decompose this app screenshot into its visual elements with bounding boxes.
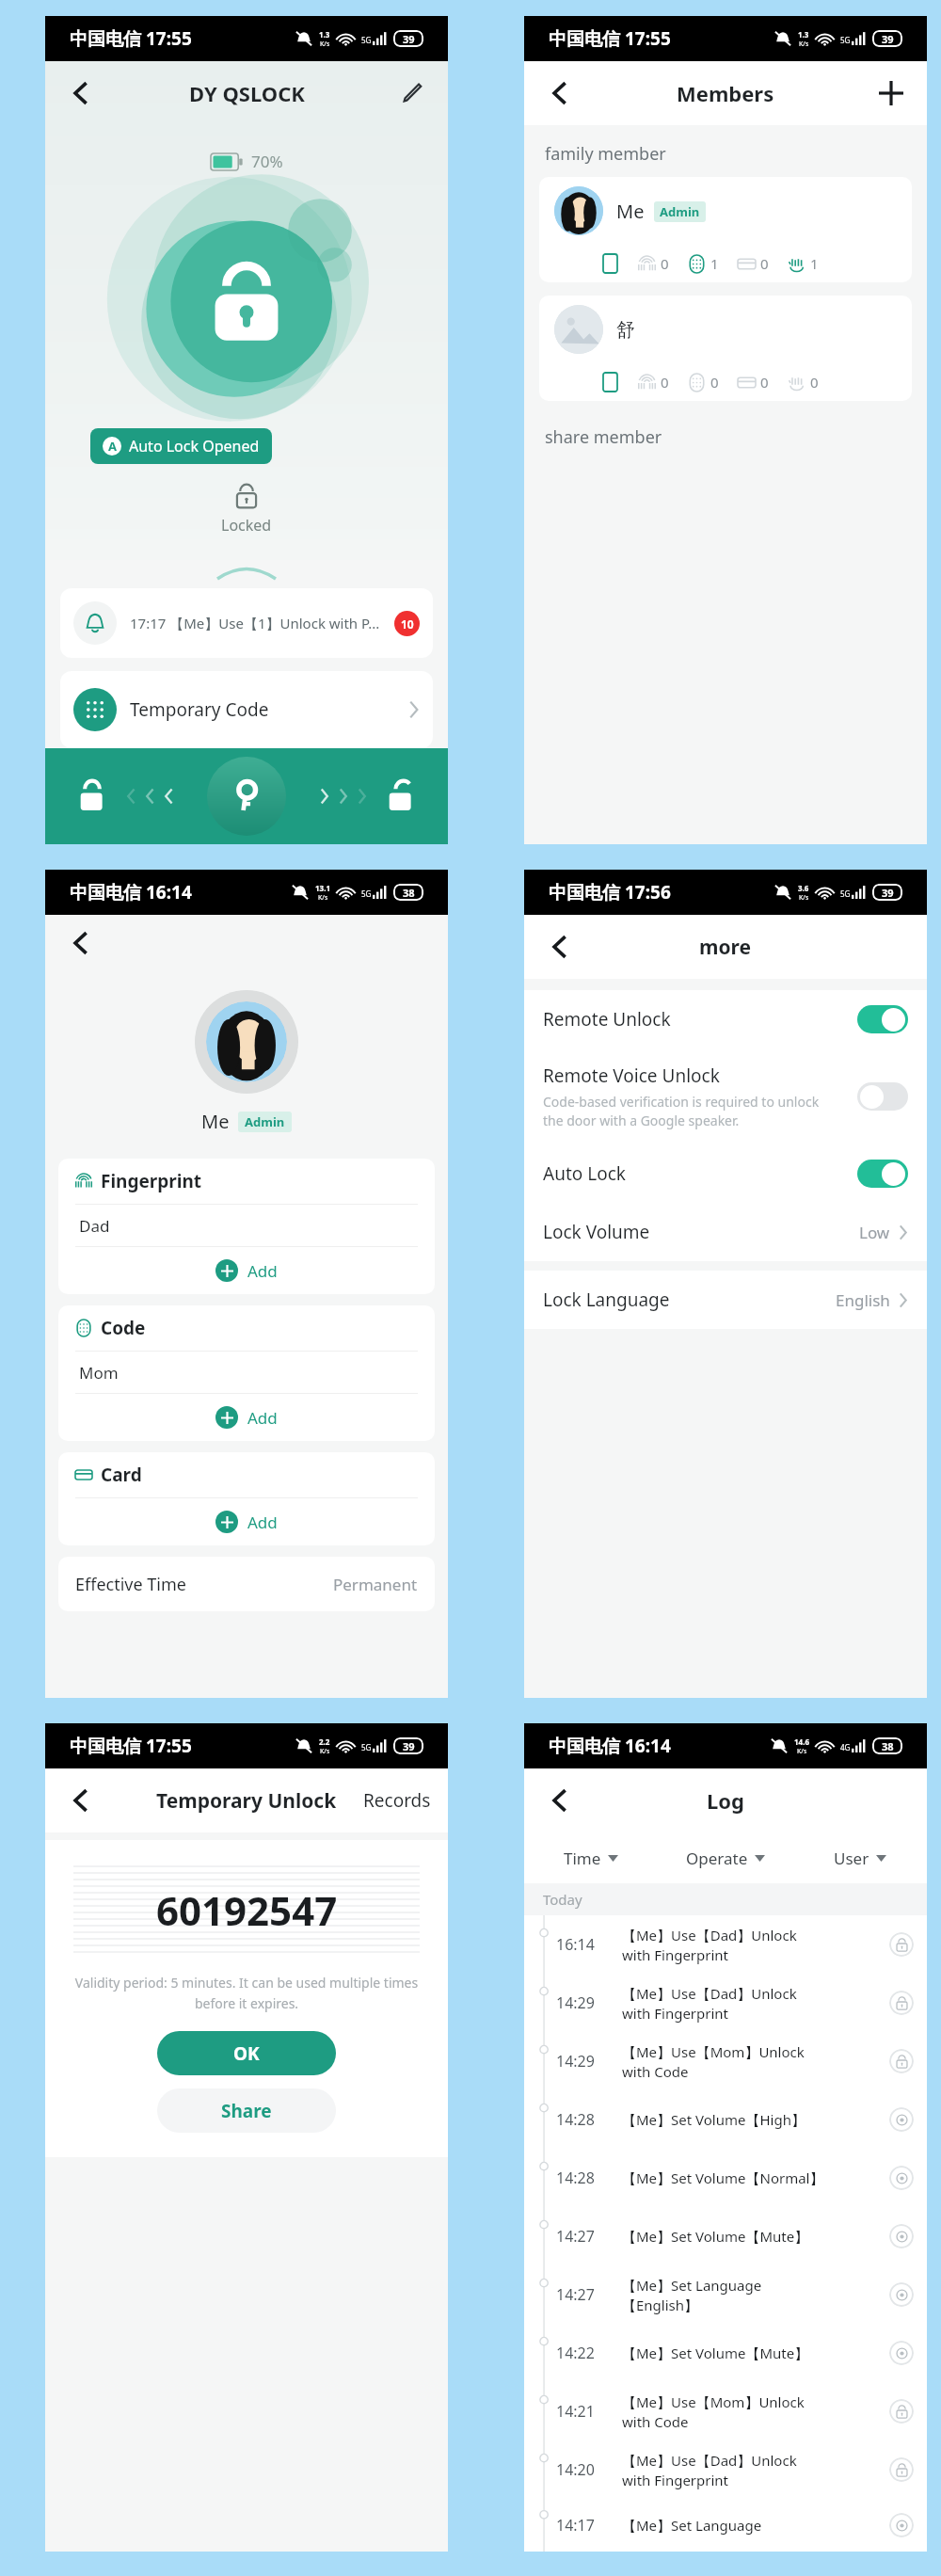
staticText: 38 bbox=[882, 1739, 894, 1753]
button[interactable]: 14:27 bbox=[524, 2207, 927, 2265]
button[interactable]: Back bbox=[60, 922, 102, 964]
staticText: Low bbox=[859, 1222, 890, 1243]
button[interactable]: Records bbox=[363, 1788, 431, 1813]
staticText: Remote Unlock bbox=[543, 1007, 671, 1032]
button[interactable]: Back bbox=[60, 72, 102, 114]
staticText: Add bbox=[247, 1407, 278, 1429]
staticText: family member bbox=[545, 142, 666, 166]
button[interactable]: Lock bbox=[45, 748, 448, 844]
staticText: Lock Volume bbox=[543, 1220, 650, 1244]
button[interactable]: Back bbox=[539, 1780, 581, 1821]
staticText: 1.3 bbox=[319, 29, 330, 40]
button[interactable]: 14:28 bbox=[524, 2149, 927, 2207]
button[interactable]: Remote Unlock bbox=[857, 1005, 908, 1033]
button[interactable]: Effective Time bbox=[58, 1557, 435, 1611]
staticText: 14:29 bbox=[556, 1992, 614, 2013]
button[interactable]: Add member bbox=[872, 74, 910, 112]
staticText: Temporary Code bbox=[130, 697, 269, 722]
staticText: Permanent bbox=[333, 1574, 418, 1595]
staticText: Validity period: 5 minutes. It can be us… bbox=[64, 1974, 429, 2012]
staticText: Remote Voice Unlock bbox=[543, 1064, 720, 1088]
staticText: 中国电信 17:55 bbox=[70, 1734, 192, 1758]
staticText: K/s bbox=[799, 893, 809, 903]
staticText: 1 bbox=[710, 254, 719, 273]
staticText: Fingerprint bbox=[101, 1169, 202, 1193]
staticText: Mom bbox=[79, 1362, 119, 1384]
staticText: 2.2 bbox=[319, 1736, 330, 1747]
other: Unlock bbox=[388, 780, 414, 812]
staticText: Share bbox=[221, 2099, 272, 2123]
staticText: 38 bbox=[403, 886, 415, 900]
button[interactable]: Lock Volume bbox=[524, 1203, 927, 1261]
button[interactable]: Auto Lock bbox=[857, 1160, 908, 1188]
staticText: Admin bbox=[660, 203, 700, 220]
staticText: 39 bbox=[882, 886, 894, 900]
staticText: 16:14 bbox=[556, 1934, 614, 1955]
button[interactable]: Add bbox=[58, 1394, 435, 1441]
staticText: 中国电信 17:56 bbox=[549, 880, 671, 904]
staticText: 0 bbox=[661, 373, 669, 392]
staticText: K/s bbox=[318, 893, 328, 903]
staticText: 5G bbox=[361, 35, 372, 45]
staticText: 【Me】Set Volume【Mute】 bbox=[622, 2344, 889, 2362]
staticText: 14:22 bbox=[556, 2343, 614, 2363]
button[interactable]: 14:29 bbox=[524, 1974, 927, 2032]
button[interactable]: Remote Voice Unlock bbox=[857, 1082, 908, 1111]
button[interactable]: Share bbox=[157, 2088, 336, 2133]
staticText: 14:20 bbox=[556, 2459, 614, 2480]
button[interactable]: User bbox=[792, 1832, 927, 1883]
button[interactable]: Add bbox=[58, 1498, 435, 1545]
button[interactable]: OK bbox=[157, 2031, 336, 2075]
button[interactable]: Remote Unlock bbox=[524, 990, 927, 1048]
button[interactable]: 14:21 bbox=[524, 2382, 927, 2440]
button[interactable]: Operate bbox=[658, 1832, 792, 1883]
staticText: 14:28 bbox=[556, 2109, 614, 2130]
staticText: 【Me】Set Language bbox=[622, 2516, 889, 2535]
staticText: A bbox=[108, 438, 117, 455]
button[interactable]: Time bbox=[524, 1832, 658, 1883]
staticText: 14.6 bbox=[794, 1736, 809, 1747]
staticText: 5G bbox=[361, 888, 372, 899]
staticText: 【Me】Use【Dad】Unlock with Fingerprint bbox=[622, 1984, 889, 2023]
button[interactable]: A bbox=[90, 428, 272, 464]
button[interactable]: Lock Language bbox=[524, 1271, 927, 1329]
button[interactable]: Back bbox=[539, 72, 581, 114]
button[interactable]: Dad bbox=[58, 1205, 435, 1246]
staticText: 60192547 bbox=[156, 1883, 338, 1937]
staticText: 中国电信 17:55 bbox=[70, 26, 192, 51]
button[interactable]: Back bbox=[539, 926, 581, 968]
button[interactable]: Slide to unlock bbox=[207, 757, 286, 836]
button[interactable]: 14:27 bbox=[524, 2265, 927, 2324]
staticText: 1.3 bbox=[798, 29, 809, 40]
button[interactable]: Add bbox=[58, 1247, 435, 1294]
button[interactable]: 17:17 【Me】Use【1】Unlock with P... bbox=[60, 588, 433, 658]
button[interactable]: 14:17 bbox=[524, 2499, 927, 2552]
staticText: 5G bbox=[361, 1742, 372, 1752]
button[interactable] bbox=[195, 990, 298, 1094]
button[interactable]: Me bbox=[539, 177, 912, 282]
staticText: 中国电信 16:14 bbox=[549, 1734, 671, 1758]
staticText: 14:27 bbox=[556, 2284, 614, 2305]
staticText: 【Me】Set Volume【High】 bbox=[622, 2110, 889, 2129]
staticText: 14:21 bbox=[556, 2401, 614, 2422]
button[interactable]: 14:20 bbox=[524, 2440, 927, 2499]
button[interactable]: Temporary Code bbox=[60, 671, 433, 748]
button[interactable]: 14:29 bbox=[524, 2032, 927, 2090]
button[interactable]: 14:28 bbox=[524, 2090, 927, 2149]
button[interactable]: Auto Lock bbox=[524, 1144, 927, 1203]
staticText: 中国电信 16:14 bbox=[70, 880, 192, 904]
staticText: 14:17 bbox=[556, 2515, 614, 2536]
button[interactable]: Edit bbox=[395, 76, 429, 110]
staticText: Admin bbox=[245, 1113, 285, 1130]
staticText: 【Me】Use【Mom】Unlock with Code bbox=[622, 2392, 889, 2431]
staticText: Records bbox=[363, 1788, 431, 1813]
staticText: Me bbox=[201, 1109, 230, 1134]
staticText: 中国电信 17:55 bbox=[549, 26, 671, 51]
button[interactable]: 舒 bbox=[539, 296, 912, 401]
button[interactable]: 14:22 bbox=[524, 2324, 927, 2382]
button[interactable]: Remote Voice Unlock bbox=[524, 1048, 927, 1144]
button[interactable]: Back bbox=[60, 1780, 102, 1821]
button[interactable]: 16:14 bbox=[524, 1915, 927, 1974]
staticText: English bbox=[836, 1289, 890, 1311]
button[interactable]: Mom bbox=[58, 1352, 435, 1393]
